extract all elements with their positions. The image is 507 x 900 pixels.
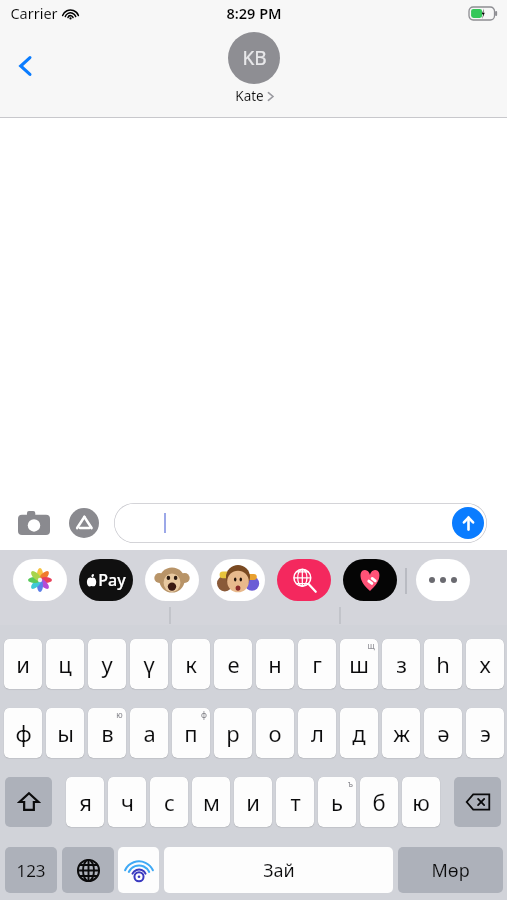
staticText: р — [226, 718, 240, 748]
staticText: э — [480, 718, 491, 748]
button[interactable]: ц — [46, 639, 84, 689]
staticText: т — [290, 787, 301, 817]
button[interactable]: м — [192, 777, 230, 827]
staticText: б — [372, 787, 386, 817]
staticText: н — [268, 649, 282, 679]
staticText: м — [203, 787, 220, 817]
button[interactable]: ф — [4, 708, 42, 758]
button[interactable]: App — [13, 559, 67, 601]
staticText: л — [311, 718, 324, 748]
staticText: д — [352, 718, 366, 748]
staticText: Мөр — [431, 858, 470, 883]
button[interactable]: Backspace — [454, 777, 501, 827]
button[interactable]: App — [277, 559, 331, 601]
button[interactable]: и — [4, 639, 42, 689]
button[interactable]: л — [298, 708, 336, 758]
staticText: у — [101, 649, 113, 679]
staticText: ы — [57, 718, 74, 748]
button[interactable]: Change keyboard — [62, 847, 114, 893]
button[interactable]: х — [466, 639, 504, 689]
staticText: ж — [393, 718, 410, 748]
button[interactable]: с — [150, 777, 188, 827]
button[interactable]: App — [343, 559, 397, 601]
button[interactable]: Dictation — [118, 847, 159, 893]
button[interactable]: п — [172, 708, 210, 758]
button[interactable]: Shift — [5, 777, 52, 827]
button[interactable]: е — [214, 639, 252, 689]
button[interactable]: Send — [114, 503, 487, 543]
staticText: ю — [116, 709, 123, 720]
button[interactable]: э — [466, 708, 504, 758]
other: Send — [452, 507, 484, 539]
button[interactable]: и — [234, 777, 272, 827]
staticText: г — [312, 649, 322, 679]
button[interactable]: т — [276, 777, 314, 827]
button[interactable]: д — [340, 708, 378, 758]
button[interactable]: KB — [228, 32, 280, 105]
staticText: ю — [412, 787, 430, 817]
staticText: Зай — [263, 858, 295, 883]
button[interactable]: Мөр — [398, 847, 503, 893]
button[interactable]: h — [424, 639, 462, 689]
button[interactable]: ә — [424, 708, 462, 758]
staticText: щ — [367, 640, 375, 651]
staticText: о — [268, 718, 282, 748]
staticText: Kate — [235, 87, 264, 105]
staticText: в — [101, 718, 114, 748]
staticText: п — [184, 718, 198, 748]
button[interactable]: ш — [340, 639, 378, 689]
staticText: h — [436, 649, 450, 679]
button[interactable]: у — [88, 639, 126, 689]
button[interactable]: ы — [46, 708, 84, 758]
staticText: Carrier — [10, 3, 58, 23]
staticText: к — [185, 649, 197, 679]
button[interactable]: App — [79, 559, 133, 601]
staticText: ф — [201, 709, 207, 720]
staticText: 8:29 PM — [226, 3, 282, 23]
button[interactable]: в — [88, 708, 126, 758]
button[interactable]: App — [211, 559, 265, 601]
button[interactable]: Camera — [16, 505, 52, 541]
staticText: з — [396, 649, 407, 679]
staticText: Pay — [98, 569, 126, 591]
button[interactable]: ю — [402, 777, 440, 827]
staticText: х — [479, 649, 491, 679]
button[interactable]: а — [130, 708, 168, 758]
button[interactable]: ү — [130, 639, 168, 689]
staticText: ц — [58, 649, 72, 679]
button[interactable]: к — [172, 639, 210, 689]
staticText: ч — [121, 787, 134, 817]
staticText: е — [227, 649, 240, 679]
staticText: и — [246, 787, 260, 817]
button[interactable]: г — [298, 639, 336, 689]
button[interactable]: Apps — [66, 505, 102, 541]
button[interactable]: Зай — [164, 847, 393, 893]
staticText: ү — [143, 649, 155, 679]
staticText: 123 — [16, 859, 46, 882]
button[interactable]: з — [382, 639, 420, 689]
button[interactable]: More apps — [416, 559, 470, 601]
button[interactable]: б — [360, 777, 398, 827]
button[interactable]: н — [256, 639, 294, 689]
button[interactable]: ь — [318, 777, 356, 827]
button[interactable]: App — [145, 559, 199, 601]
staticText: ъ — [348, 778, 353, 789]
button[interactable]: Back — [6, 46, 46, 86]
staticText: с — [164, 787, 175, 817]
button[interactable]: ж — [382, 708, 420, 758]
staticText: ш — [349, 649, 369, 679]
button[interactable]: р — [214, 708, 252, 758]
staticText: и — [16, 649, 30, 679]
staticText: ь — [331, 787, 343, 817]
button[interactable]: о — [256, 708, 294, 758]
button[interactable]: 123 — [5, 847, 57, 893]
staticText: ф — [15, 718, 32, 748]
staticText: ә — [437, 718, 450, 748]
staticText: я — [79, 787, 92, 817]
button[interactable]: я — [66, 777, 104, 827]
staticText: KB — [242, 45, 267, 71]
staticText: а — [143, 718, 156, 748]
button[interactable]: ч — [108, 777, 146, 827]
